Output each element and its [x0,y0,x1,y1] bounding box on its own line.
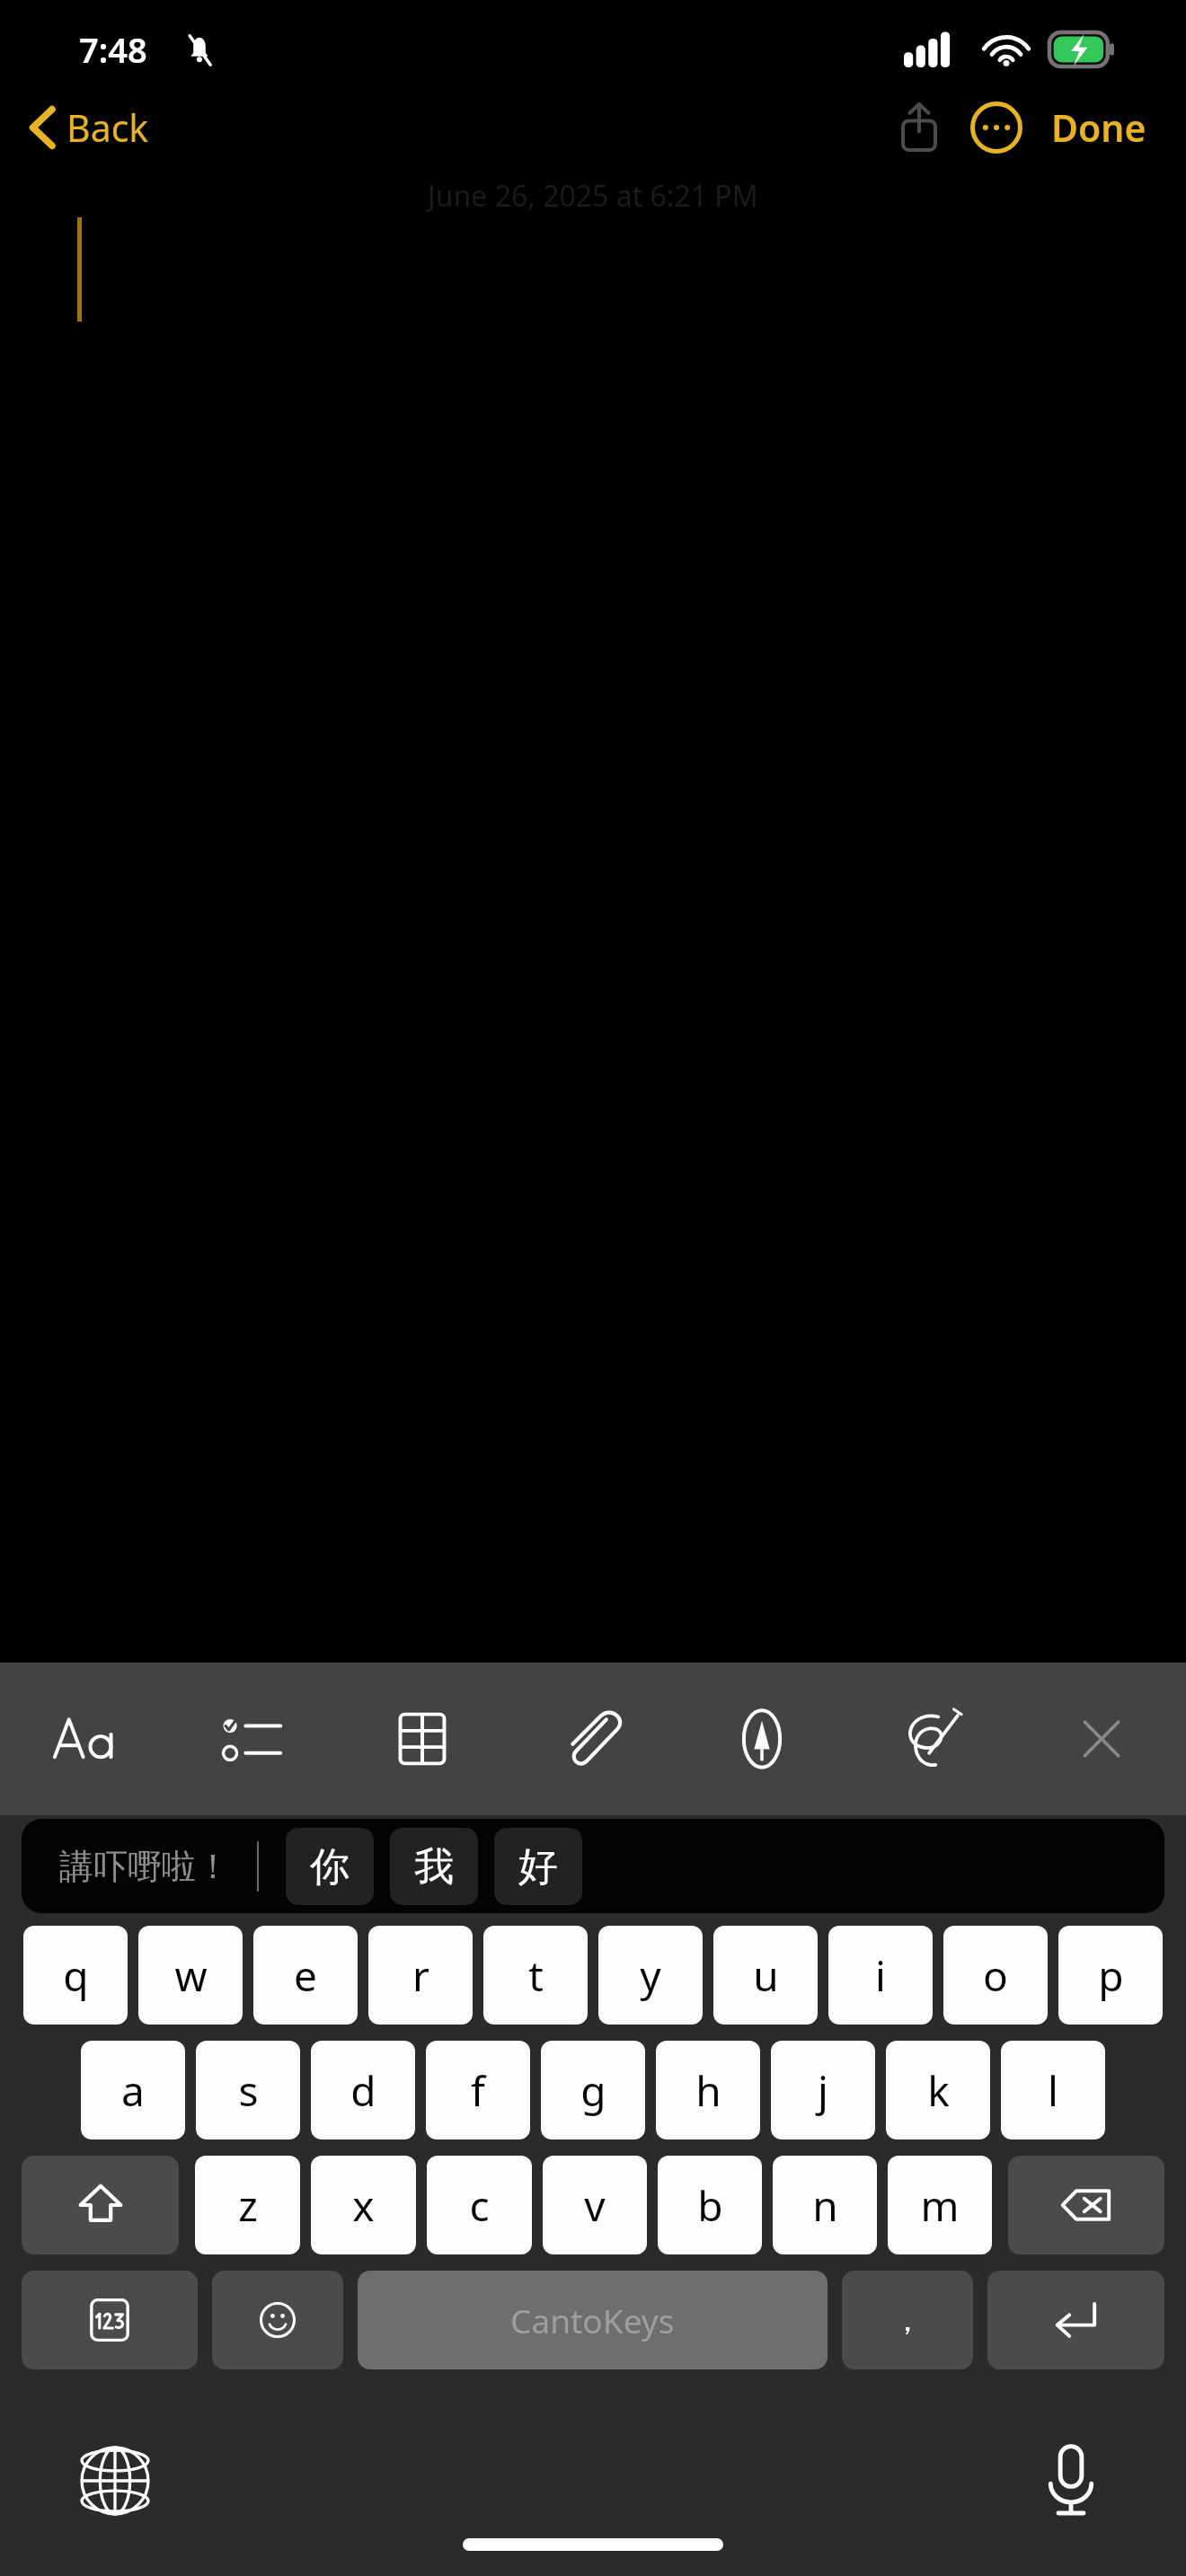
button[interactable]: r [368,1926,473,2025]
staticText: n [812,2177,838,2234]
staticText: t [528,1947,544,2004]
button[interactable]: More [958,89,1035,166]
button[interactable]: Emoji [212,2271,343,2369]
button[interactable]: i [828,1926,933,2025]
button[interactable]: Shift [22,2156,179,2254]
button[interactable]: CantoKeys [358,2271,828,2369]
staticText: k [927,2062,950,2119]
button[interactable]: Return [987,2271,1164,2369]
button[interactable]: s [196,2041,300,2139]
button[interactable]: w [138,1926,243,2025]
button[interactable]: l [1001,2041,1105,2139]
button[interactable]: c [427,2156,532,2254]
staticText: Done [1051,102,1146,153]
staticText: u [753,1947,779,2004]
button[interactable]: k [886,2041,990,2139]
button[interactable]: p [1058,1926,1163,2025]
staticText: b [697,2177,723,2234]
button[interactable]: j [771,2041,875,2139]
staticText: 7:48 [79,26,147,73]
staticText: j [818,2062,828,2119]
staticText: z [238,2177,258,2234]
button[interactable]: ， [842,2271,973,2369]
button[interactable]: Table [338,1663,507,1815]
staticText: h [695,2062,721,2119]
button[interactable]: u [713,1926,818,2025]
button[interactable]: 我 [390,1828,478,1905]
staticText: c [469,2177,490,2234]
button[interactable]: d [311,2041,415,2139]
button[interactable]: n [773,2156,877,2254]
staticText: 講吓嘢啦！ [59,1845,230,1888]
button[interactable]: Switch keyboard [61,2427,169,2535]
staticText: m [920,2177,960,2234]
staticText: 你 [310,1842,350,1892]
button[interactable]: Share [881,89,958,166]
button[interactable]: o [943,1926,1048,2025]
button[interactable]: q [23,1926,128,2025]
staticText: a [121,2062,145,2119]
button[interactable]: t [483,1926,588,2025]
staticText: Back [66,102,149,153]
button[interactable]: x [311,2156,416,2254]
button[interactable]: 你 [286,1828,374,1905]
button[interactable]: v [543,2156,647,2254]
button[interactable]: Scribble [846,1663,1016,1815]
staticText: o [983,1947,1008,2004]
button[interactable]: Done [1039,92,1159,163]
staticText: ， [892,2301,923,2340]
button[interactable]: g [541,2041,645,2139]
staticText: CantoKeys [510,2298,675,2342]
staticText: x [352,2177,375,2234]
button[interactable]: Close keyboard [1016,1663,1186,1815]
staticText: 好 [518,1842,558,1892]
button[interactable]: 好 [494,1828,582,1905]
button[interactable]: e [253,1926,358,2025]
button[interactable]: Attach [507,1663,677,1815]
staticText: f [471,2062,485,2119]
button[interactable]: m [888,2156,992,2254]
button[interactable]: Markup [677,1663,846,1815]
button[interactable]: b [658,2156,762,2254]
button[interactable]: a [81,2041,185,2139]
staticText: q [63,1947,89,2004]
button[interactable]: Backspace [1008,2156,1164,2254]
staticText: 我 [414,1842,454,1892]
button[interactable]: Dictation [1017,2427,1125,2535]
staticText: d [350,2062,376,2119]
staticText: e [294,1947,317,2004]
staticText: i [875,1947,886,2004]
staticText: y [640,1947,661,2004]
button[interactable]: z [195,2156,300,2254]
staticText: s [238,2062,259,2119]
staticText: g [580,2062,606,2119]
button[interactable]: h [656,2041,760,2139]
button[interactable]: y [598,1926,703,2025]
staticText: l [1048,2062,1058,2119]
button[interactable]: Text format [0,1663,169,1815]
button[interactable]: Back [0,95,164,160]
staticText: June 26, 2025 at 6:21 PM [428,176,758,216]
staticText: w [174,1947,208,2004]
button[interactable]: Numbers [22,2271,198,2369]
button[interactable]: Checklist [169,1663,338,1815]
staticText: p [1098,1947,1124,2004]
staticText: v [584,2177,606,2234]
staticText: r [412,1947,429,2004]
button[interactable]: f [426,2041,530,2139]
